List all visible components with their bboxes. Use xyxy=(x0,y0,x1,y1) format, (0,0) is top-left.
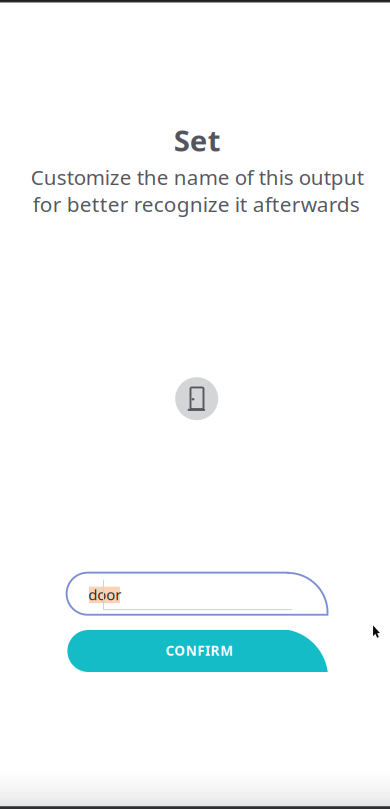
staticText: Customize the name of this output xyxy=(31,163,364,191)
staticText: Set xyxy=(174,120,221,160)
button[interactable]: CONFIRM xyxy=(67,630,328,672)
button[interactable]: door xyxy=(65,573,325,615)
staticText: door xyxy=(88,584,121,605)
staticText: for better recognize it afterwards xyxy=(33,190,360,218)
staticText: CONFIRM xyxy=(166,641,233,660)
